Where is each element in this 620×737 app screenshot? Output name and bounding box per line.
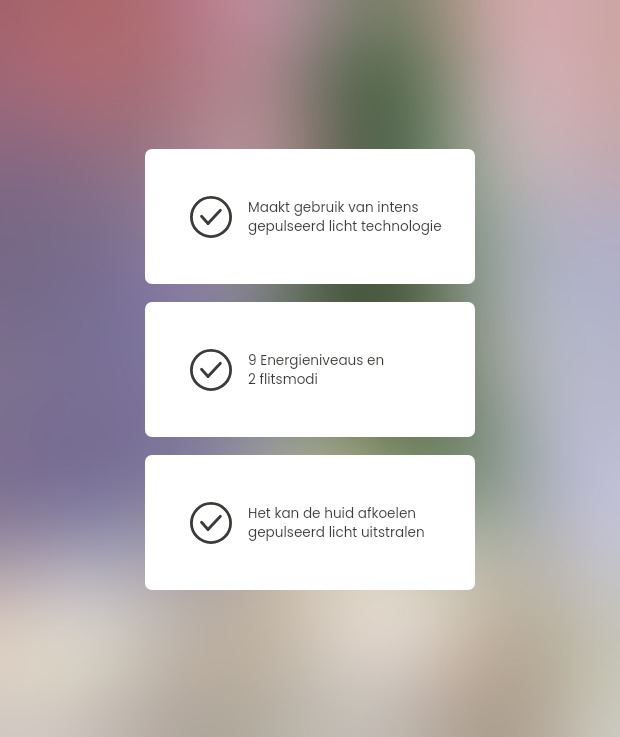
staticText: 2 flitsmodi bbox=[248, 370, 318, 389]
staticText: gepulseerd licht technologie bbox=[248, 217, 442, 236]
staticText: Het kan de huid afkoelen bbox=[248, 504, 417, 523]
button[interactable]: Maakt gebruik van intens bbox=[145, 149, 475, 284]
staticText: 9 Energieniveaus en bbox=[248, 351, 385, 370]
staticText: Maakt gebruik van intens bbox=[248, 198, 419, 217]
button[interactable]: Het kan de huid afkoelen bbox=[145, 455, 475, 590]
button[interactable]: 9 Energieniveaus en bbox=[145, 302, 475, 437]
staticText: gepulseerd licht uitstralen bbox=[248, 523, 425, 542]
